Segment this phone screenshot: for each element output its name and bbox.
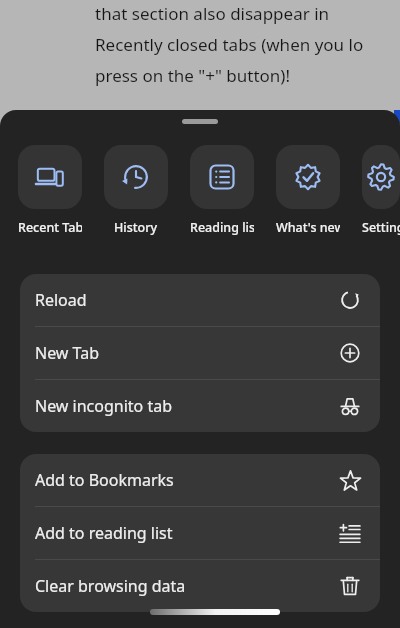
button[interactable]: What's new [276, 145, 340, 236]
button[interactable]: Reload [20, 274, 380, 326]
button[interactable]: Add to Bookmarks [20, 454, 380, 506]
staticText: Add to Bookmarks [35, 469, 174, 491]
button[interactable]: Recent Tabs [18, 145, 82, 236]
button[interactable]: New Tab [20, 327, 380, 379]
button[interactable]: Add to reading list [20, 507, 380, 559]
staticText: New incognito tab [35, 395, 173, 417]
staticText: Reading list [190, 219, 254, 236]
staticText: Recent Tabs [18, 219, 82, 236]
staticText: that section also disappear in [95, 2, 330, 25]
button[interactable]: Reading list [190, 145, 254, 236]
staticText: Settings [362, 219, 400, 236]
staticText: Add to reading list [35, 522, 173, 544]
button[interactable]: History [104, 145, 168, 236]
button[interactable]: Clear browsing data [20, 560, 380, 612]
staticText: Clear browsing data [35, 575, 186, 597]
staticText: Reload [35, 289, 87, 311]
staticText: History [114, 219, 158, 236]
staticText: What's new [276, 219, 340, 236]
staticText: Recently closed tabs (when you lo [95, 33, 364, 56]
button[interactable]: Settings [362, 145, 400, 236]
button[interactable]: New incognito tab [20, 380, 380, 432]
staticText: press on the "+" button)! [95, 64, 291, 87]
staticText: New Tab [35, 342, 100, 364]
